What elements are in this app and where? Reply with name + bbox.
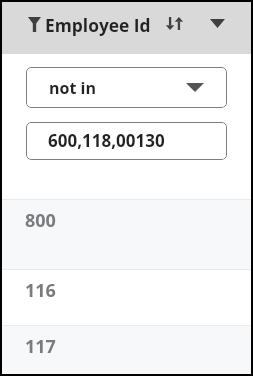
button[interactable]: not in	[26, 67, 227, 108]
button[interactable]: 800	[2, 200, 251, 269]
button[interactable]: Employee Id	[2, 2, 251, 54]
staticText: Employee Id	[45, 13, 151, 37]
button[interactable]: Open column menu	[206, 12, 228, 34]
button[interactable]: 116	[2, 270, 251, 325]
button[interactable]: Sort	[163, 12, 185, 34]
staticText: 117	[25, 334, 56, 359]
button[interactable]: 600,118,00130	[26, 122, 227, 160]
staticText: 116	[25, 278, 56, 303]
staticText: 600,118,00130	[48, 129, 165, 152]
staticText: not in	[49, 77, 96, 99]
staticText: 800	[25, 208, 56, 233]
button[interactable]: 117	[2, 326, 251, 374]
